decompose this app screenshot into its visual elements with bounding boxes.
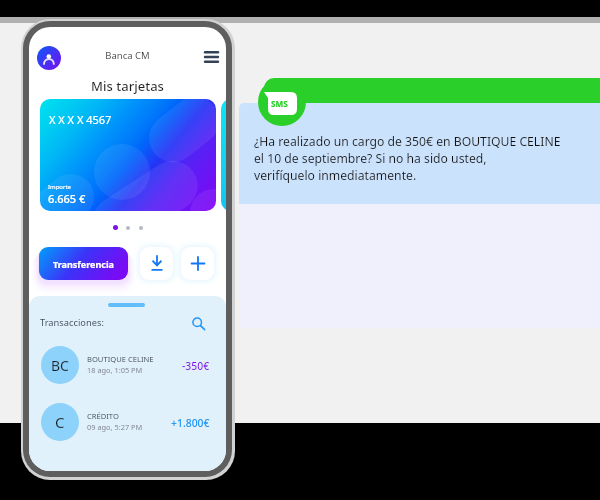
button[interactable]: C: [29, 403, 226, 443]
staticText: +1.800€: [171, 416, 210, 430]
button[interactable]: Transacciones:: [29, 296, 226, 471]
button[interactable]: Añadir: [181, 247, 214, 280]
staticText: Banca CM: [29, 49, 226, 62]
staticText: Transacciones:: [40, 316, 104, 329]
staticText: BOUTIQUE CELINE: [87, 354, 154, 364]
staticText: C: [55, 412, 65, 432]
staticText: Importe: [48, 183, 71, 191]
button[interactable]: Buscar: [188, 313, 208, 333]
staticText: 18 ago, 1:05 PM: [87, 365, 143, 375]
staticText: CRÉDITO: [87, 411, 119, 421]
button[interactable]: SMS: [258, 78, 306, 126]
staticText: Transferencia: [53, 258, 114, 270]
button[interactable]: Perfil: [37, 46, 61, 70]
button[interactable]: Menú: [201, 47, 221, 67]
staticText: 09 ago, 5:27 PM: [87, 422, 143, 432]
button[interactable]: X X X X 4567: [40, 99, 216, 211]
button[interactable]: Descargar: [140, 247, 173, 280]
staticText: BC: [51, 356, 69, 375]
staticText: -350€: [182, 359, 210, 373]
staticText: X X X X 4567: [49, 112, 112, 127]
button[interactable]: Transferencia: [39, 247, 128, 280]
staticText: ¿Ha realizado un cargo de 350€ en BOUTIQ…: [254, 133, 594, 184]
button[interactable]: BC: [29, 346, 226, 386]
staticText: SMS: [271, 98, 288, 109]
staticText: 6.665 €: [48, 191, 86, 206]
staticText: Mis tarjetas: [29, 77, 226, 95]
